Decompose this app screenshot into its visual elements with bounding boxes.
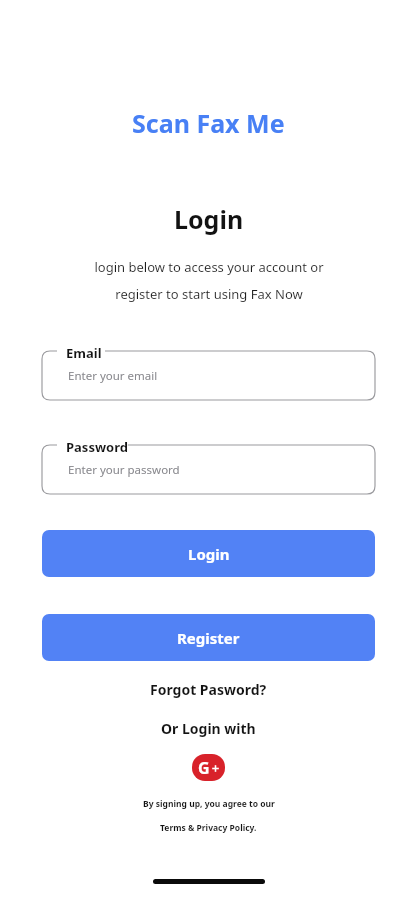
staticText: By signing up, you agree to our: [143, 798, 275, 810]
staticText: register to start using Fax Now: [115, 285, 303, 303]
button[interactable]: Forgot Pasword?: [142, 677, 275, 702]
staticText: G: [198, 757, 210, 779]
staticText: Login: [188, 544, 230, 564]
staticText: Register: [177, 628, 240, 648]
staticText: Terms & Privacy Policy.: [160, 822, 257, 834]
staticText: Forgot Pasword?: [150, 680, 267, 699]
staticText: Login: [174, 202, 244, 236]
staticText: Or Login with: [161, 719, 256, 738]
button[interactable]: Login: [42, 530, 375, 577]
button[interactable]: Register: [42, 614, 375, 661]
staticText: login below to access your account or: [94, 258, 324, 276]
button[interactable]: Sign in with Google: [192, 754, 225, 781]
button[interactable]: Terms & Privacy Policy.: [154, 820, 263, 836]
staticText: Scan Fax Me: [132, 106, 285, 140]
staticText: Enter your password: [68, 462, 180, 478]
staticText: Password: [66, 438, 128, 456]
staticText: Email: [66, 344, 102, 362]
button[interactable]: Enter your email: [42, 344, 375, 400]
staticText: Enter your email: [68, 368, 158, 384]
button[interactable]: Enter your password: [42, 438, 375, 494]
